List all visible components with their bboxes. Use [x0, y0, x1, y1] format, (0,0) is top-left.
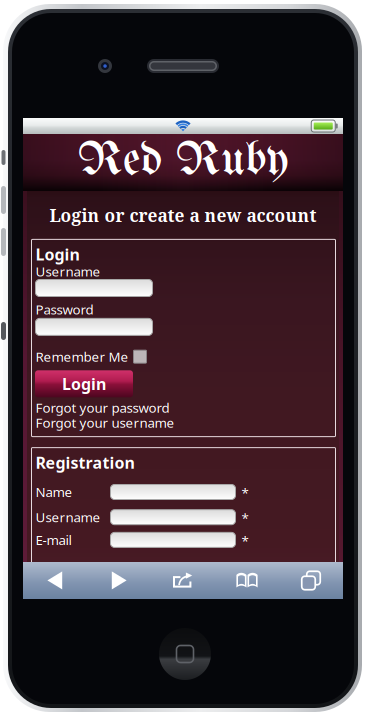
- staticText: Forgot your password: [35, 399, 169, 416]
- button[interactable]: Back: [23, 562, 87, 599]
- button[interactable]: Tabs: [279, 562, 343, 599]
- staticText: Registration: [35, 452, 134, 473]
- staticText: Red Ruby: [78, 137, 288, 186]
- staticText: E-mail: [35, 531, 71, 549]
- button[interactable]: Remember Me: [35, 348, 146, 365]
- button[interactable]: Bookmarks: [215, 562, 279, 599]
- staticText: *: [241, 509, 248, 527]
- button[interactable]: Forgot your username: [35, 414, 174, 431]
- button[interactable]: Share: [151, 562, 215, 599]
- staticText: Username: [35, 508, 100, 526]
- button[interactable]: Login: [35, 370, 133, 397]
- staticText: Login or create a new account: [49, 203, 316, 227]
- staticText: Username: [35, 262, 100, 280]
- staticText: Forgot your username: [35, 414, 174, 431]
- button[interactable]: Forward: [87, 562, 151, 599]
- button[interactable]: Forgot your password: [35, 399, 169, 416]
- staticText: Login: [35, 244, 79, 265]
- staticText: Password: [35, 300, 93, 318]
- staticText: *: [241, 532, 248, 550]
- staticText: *: [241, 484, 248, 502]
- staticText: Login: [62, 373, 106, 394]
- staticText: Remember Me: [35, 348, 128, 365]
- staticText: Name: [35, 483, 72, 501]
